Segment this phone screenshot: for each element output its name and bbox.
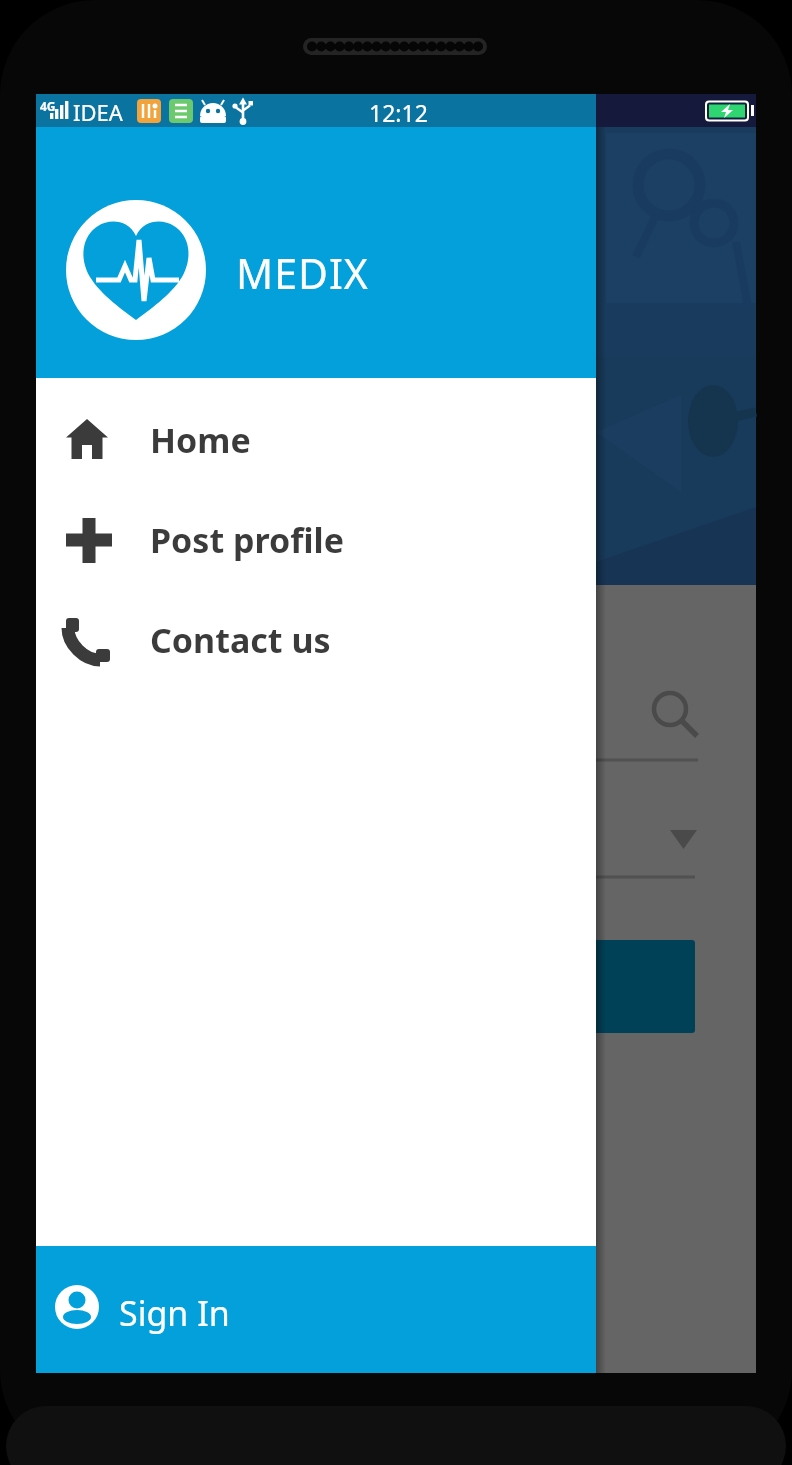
staticText: 12:12 bbox=[369, 97, 428, 128]
staticText: IDEA bbox=[73, 97, 123, 127]
button[interactable]: Home bbox=[36, 390, 596, 490]
staticText: Post profile bbox=[150, 517, 345, 563]
button[interactable]: Contact us bbox=[36, 590, 596, 690]
staticText: Contact us bbox=[150, 617, 331, 663]
button[interactable] bbox=[336, 940, 695, 1033]
button[interactable]: Post profile bbox=[36, 490, 596, 590]
staticText: Sign In bbox=[119, 1290, 230, 1336]
staticText: Home bbox=[150, 417, 251, 463]
staticText: 4G bbox=[40, 98, 56, 114]
staticText: MEDIX bbox=[236, 245, 369, 301]
button[interactable]: Sign In bbox=[36, 1246, 596, 1373]
